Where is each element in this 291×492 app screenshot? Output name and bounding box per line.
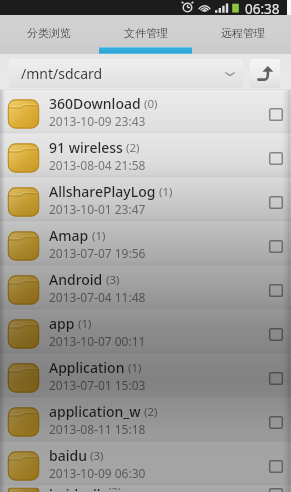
button[interactable]: 远程管理 (194, 15, 291, 54)
staticText: 2013-07-04 11:48 (49, 289, 146, 305)
staticText: 91 wireless (49, 138, 123, 157)
button[interactable]: AllsharePlayLog (0, 178, 291, 222)
staticText: 2013-08-11 15:18 (49, 421, 146, 437)
staticText: Application (49, 358, 125, 377)
button[interactable]: Amap (0, 222, 291, 266)
staticText: (1) (159, 184, 173, 200)
staticText: baidu_lk (49, 485, 105, 491)
staticText: 远程管理 (221, 26, 265, 40)
staticText: 文件管理 (124, 26, 168, 40)
button[interactable]: Select 360Download (269, 108, 283, 121)
staticText: 2013-08-04 21:58 (49, 157, 146, 173)
button[interactable]: Select app (269, 328, 283, 341)
staticText: (1) (92, 228, 106, 244)
button[interactable]: application_w (0, 398, 291, 442)
staticText: (3) (106, 272, 120, 288)
staticText: AllsharePlayLog (49, 182, 156, 201)
button[interactable]: 91 wireless (0, 134, 291, 178)
staticText: 2013-10-01 23:47 (49, 201, 146, 217)
staticText: 2013-10-09 23:43 (49, 113, 146, 129)
staticText: application_w (49, 402, 141, 421)
staticText: baidu (49, 446, 87, 465)
staticText: (2) (126, 140, 140, 156)
button[interactable]: Android (0, 266, 291, 310)
button[interactable]: Select application_w (269, 416, 283, 429)
button[interactable]: Application (0, 354, 291, 398)
button[interactable]: Select Android (269, 284, 283, 297)
staticText: 2013-07-01 15:03 (49, 377, 146, 393)
button[interactable]: /mnt/sdcard (9, 59, 243, 88)
button[interactable]: Select Application (269, 372, 283, 385)
staticText: (0) (144, 96, 158, 112)
button[interactable]: 分类浏览 (0, 15, 97, 54)
staticText: (2) (108, 484, 122, 490)
staticText: 06:38 (245, 0, 280, 15)
staticText: app (49, 314, 75, 333)
staticText: Amap (49, 226, 89, 245)
button[interactable]: baidu (0, 442, 291, 486)
staticText: Android (49, 270, 103, 289)
button[interactable]: Select Amap (269, 240, 283, 253)
staticText: 2013-07-07 19:56 (49, 245, 146, 261)
staticText: (2) (144, 404, 158, 420)
staticText: 2013-10-09 06:30 (49, 465, 146, 481)
staticText: (1) (128, 360, 142, 376)
button[interactable]: Up one level (250, 59, 280, 88)
button[interactable]: Select baidu (269, 460, 283, 473)
staticText: (1) (78, 316, 92, 332)
button[interactable]: Select AllsharePlayLog (269, 196, 283, 209)
button[interactable]: baidu_lk (0, 486, 291, 492)
staticText: /mnt/sdcard (21, 64, 225, 83)
button[interactable]: Select 91 wireless (269, 152, 283, 165)
button[interactable]: 360Download (0, 90, 291, 134)
staticText: (3) (90, 448, 104, 464)
staticText: 2013-10-07 00:11 (49, 333, 146, 349)
button[interactable]: app (0, 310, 291, 354)
staticText: 分类浏览 (27, 26, 71, 40)
button[interactable]: Select baidu_lk (269, 488, 283, 492)
staticText: 360Download (49, 94, 141, 113)
button[interactable]: 文件管理 (97, 15, 194, 54)
